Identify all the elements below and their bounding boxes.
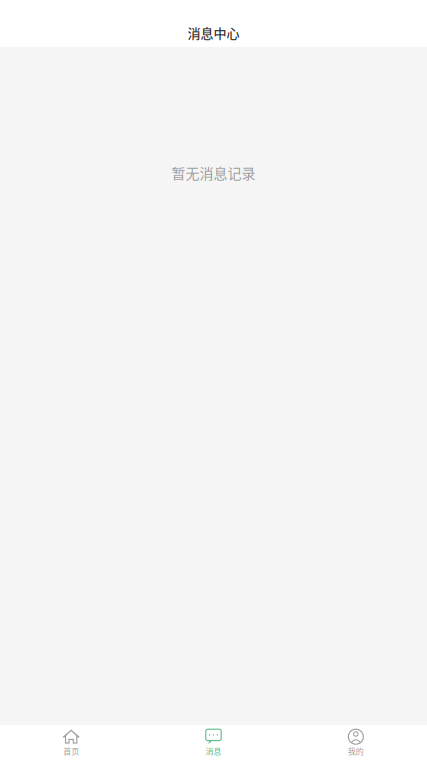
staticText: 我的 [348, 745, 364, 757]
staticText: 暂无消息记录 [171, 162, 255, 183]
button[interactable]: 消息 [142, 724, 285, 760]
button[interactable]: 我的 [285, 724, 427, 760]
staticText: 消息 [205, 745, 221, 757]
button[interactable]: 首页 [0, 724, 142, 760]
staticText: 消息中心 [187, 23, 239, 42]
staticText: 首页 [63, 745, 79, 757]
